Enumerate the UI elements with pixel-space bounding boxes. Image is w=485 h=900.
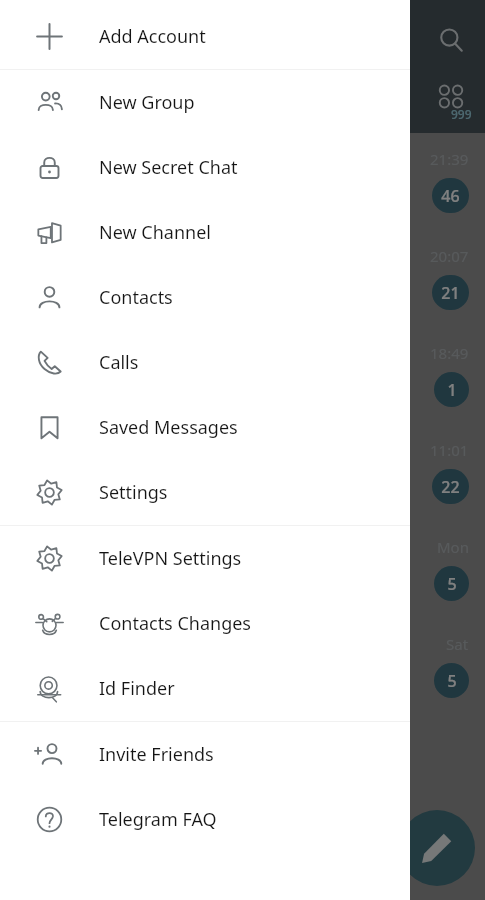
staticText: 999 [451, 106, 472, 122]
staticText: Id Finder [99, 676, 175, 701]
staticText: Add Account [99, 24, 206, 49]
staticText: 22 [441, 476, 460, 498]
button[interactable]: Id Finder [0, 656, 410, 721]
staticText: Settings [99, 480, 168, 505]
staticText: Sat [446, 634, 469, 654]
staticText: New Secret Chat [99, 155, 238, 180]
button[interactable]: Chat folders, 999 unread [425, 72, 477, 124]
button[interactable]: Add Account [0, 3, 410, 69]
staticText: Invite Friends [99, 742, 214, 767]
staticText: 21 [441, 282, 460, 304]
staticText: 5 [447, 670, 457, 692]
staticText: Mon [437, 537, 469, 557]
button[interactable]: Calls [0, 330, 410, 395]
staticText: Telegram FAQ [99, 807, 217, 832]
staticText: 5 [447, 573, 457, 595]
button[interactable]: Contacts Changes [0, 591, 410, 656]
button[interactable]: Saved Messages [0, 395, 410, 460]
button[interactable]: Search [425, 14, 477, 66]
staticText: 1 [447, 379, 457, 401]
staticText: 11:01 [430, 440, 469, 460]
staticText: Contacts Changes [99, 611, 251, 636]
button[interactable]: Contacts [0, 265, 410, 330]
button[interactable]: New Channel [0, 200, 410, 265]
staticText: New Group [99, 90, 195, 115]
button[interactable]: Invite Friends [0, 722, 410, 787]
button[interactable]: New Group [0, 70, 410, 135]
staticText: 21:39 [430, 149, 469, 169]
staticText: TeleVPN Settings [99, 546, 242, 571]
button[interactable]: Telegram FAQ [0, 787, 410, 852]
staticText: New Channel [99, 220, 211, 245]
button[interactable]: New message [399, 810, 475, 886]
staticText: 18:49 [430, 343, 469, 363]
staticText: Contacts [99, 285, 173, 310]
staticText: Saved Messages [99, 415, 238, 440]
button[interactable]: New Secret Chat [0, 135, 410, 200]
button[interactable]: TeleVPN Settings [0, 526, 410, 591]
button[interactable]: Settings [0, 460, 410, 525]
staticText: Calls [99, 350, 139, 375]
staticText: 46 [441, 185, 460, 207]
staticText: 20:07 [430, 246, 469, 266]
